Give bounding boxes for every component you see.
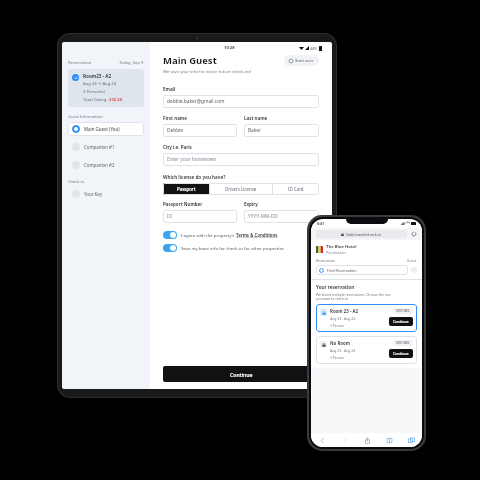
staticText: Room23 - A2 xyxy=(83,73,112,79)
button[interactable]: Continue xyxy=(389,317,413,326)
staticText: Reservation xyxy=(68,60,92,66)
staticText: . xyxy=(278,232,280,238)
staticText: 8:41 xyxy=(317,221,325,226)
staticText: We save your info for easier future chec… xyxy=(163,69,252,75)
staticText: Continue xyxy=(230,371,253,378)
button[interactable]: Continue xyxy=(163,366,319,382)
staticText: you want to check-in xyxy=(316,296,348,300)
button[interactable]: Continue xyxy=(389,349,413,358)
button[interactable]: Find Reservation xyxy=(316,265,408,275)
staticText: Terms & Conditions xyxy=(236,232,278,238)
staticText: Which license do you have? xyxy=(163,174,226,180)
staticText: Passport Number xyxy=(163,201,203,207)
staticText: Aug 24 → Aug 24 xyxy=(83,81,117,87)
button[interactable]: Bookmarks xyxy=(383,434,395,446)
staticText: Aug 23 - Aug 24 xyxy=(330,316,356,321)
staticText: Baker xyxy=(248,127,262,134)
button[interactable]: Start over xyxy=(284,55,319,66)
button[interactable]: Drivers License xyxy=(210,183,272,195)
staticText: Pre-check-in xyxy=(326,250,346,255)
staticText: We found multiple reservations. Choose t… xyxy=(316,292,391,296)
staticText: Your Key xyxy=(84,191,102,197)
staticText: Gokl.travel/check-in xyxy=(346,232,382,237)
button[interactable]: Forward xyxy=(338,434,350,446)
button[interactable]: Tabs xyxy=(405,434,417,446)
staticText: Start over xyxy=(295,58,314,63)
button[interactable]: Room23 - A2 xyxy=(68,69,144,107)
staticText: Today, Sep 9 xyxy=(119,60,144,66)
button[interactable]: Companion #1 xyxy=(68,140,144,154)
staticText: Find Reservation xyxy=(327,268,357,273)
staticText: Drivers License xyxy=(225,186,257,192)
staticText: Continue xyxy=(393,319,409,324)
staticText: $32.20 xyxy=(109,97,123,103)
button[interactable]: Baker xyxy=(244,124,319,137)
staticText: 3 Person xyxy=(330,323,344,328)
staticText: 10:28 xyxy=(224,45,235,51)
staticText: Continue xyxy=(393,351,409,356)
staticText: SYD1286 xyxy=(396,341,410,345)
button[interactable]: Reload xyxy=(411,231,417,237)
staticText: Main Guest xyxy=(163,54,217,67)
staticText: Total Owing: xyxy=(83,97,109,103)
staticText: debbie.baker@gmail.com xyxy=(167,98,225,105)
staticText: Aug 23 - Aug 24 xyxy=(330,348,356,353)
staticText: ID xyxy=(167,213,173,220)
staticText: Companion #1 xyxy=(84,144,115,150)
button[interactable]: No Room xyxy=(316,336,417,364)
button[interactable]: Enter your hometown xyxy=(163,153,319,166)
staticText: Your reservation xyxy=(316,284,355,290)
staticText: First name xyxy=(163,115,187,121)
staticText: Save my basic info for check-in for othe… xyxy=(181,245,284,251)
button[interactable]: Main Guest (You) xyxy=(68,122,144,136)
staticText: Passport xyxy=(177,186,196,192)
staticText: 3 Person xyxy=(330,355,344,360)
staticText: Guest xyxy=(407,258,417,263)
button[interactable]: Gokl.travel/check-in xyxy=(316,230,407,238)
staticText: Expiry xyxy=(244,201,258,207)
button[interactable]: Save my basic info for check-in for othe… xyxy=(163,244,319,252)
staticText: ID Card xyxy=(288,186,304,192)
staticText: Last name xyxy=(244,115,268,121)
staticText: The Blue Hotel xyxy=(326,244,357,250)
button[interactable]: Debbie xyxy=(163,124,237,137)
button[interactable]: Share xyxy=(361,434,373,446)
staticText: 44% xyxy=(310,46,318,51)
button[interactable]: I agree with the property's xyxy=(163,231,319,239)
button[interactable]: Your Key xyxy=(68,187,144,201)
button[interactable]: Passport xyxy=(163,183,209,195)
staticText: Debbie xyxy=(167,127,184,134)
staticText: Email xyxy=(163,86,176,92)
staticText: Room 23 - A2 xyxy=(330,308,359,314)
button[interactable]: ID Card xyxy=(273,183,319,195)
button[interactable]: ID xyxy=(163,210,237,223)
staticText: SYD1385 xyxy=(396,309,410,313)
staticText: Companion #2 xyxy=(84,162,115,168)
button[interactable]: Back xyxy=(316,434,328,446)
staticText: Reservation xyxy=(316,258,335,263)
staticText: Check-in xyxy=(68,179,85,184)
staticText: 3 Person(s) xyxy=(83,89,105,95)
button[interactable]: YYYY-MM-DD xyxy=(244,210,319,223)
staticText: Main Guest (You) xyxy=(84,126,120,132)
staticText: I agree with the property's xyxy=(181,232,236,238)
button[interactable]: Companion #2 xyxy=(68,158,144,172)
staticText: City i.e. Paris xyxy=(163,144,192,150)
button[interactable]: debbie.baker@gmail.com xyxy=(163,95,319,108)
staticText: No Room xyxy=(330,340,351,346)
staticText: Enter your hometown xyxy=(167,156,217,163)
staticText: YYYY-MM-DD xyxy=(248,213,278,220)
staticText: Guest Information xyxy=(68,114,103,119)
button[interactable]: Room 23 - A2 xyxy=(316,304,417,332)
